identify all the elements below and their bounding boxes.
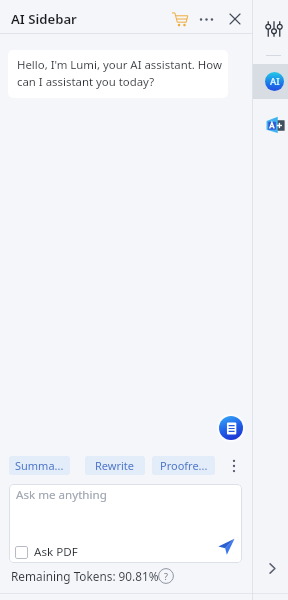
staticText: Hello, I'm Lumi, your AI assistant. How … xyxy=(17,57,226,89)
staticText: Rewrite xyxy=(95,458,135,473)
button[interactable]: Rewrite xyxy=(85,456,145,475)
button[interactable]: Send xyxy=(217,537,236,556)
button[interactable]: Close xyxy=(225,9,245,29)
button[interactable]: Document summary xyxy=(219,416,243,440)
button[interactable]: Ask PDF xyxy=(14,543,79,561)
button[interactable]: Translate xyxy=(263,113,287,137)
button[interactable]: AI assistant xyxy=(253,64,288,99)
staticText: Proofre... xyxy=(160,458,208,473)
staticText: AI xyxy=(270,75,280,88)
staticText: Summa... xyxy=(15,458,64,473)
button[interactable]: Expand panel xyxy=(262,558,282,578)
button[interactable]: Proofre... xyxy=(152,456,215,475)
staticText: AI Sidebar xyxy=(11,10,77,28)
staticText: Ask PDF xyxy=(34,544,78,560)
button[interactable]: Help xyxy=(158,568,174,584)
button[interactable]: Settings xyxy=(265,20,283,38)
staticText: ? xyxy=(164,570,168,582)
staticText: Remaining Tokens: 90.81% xyxy=(11,568,159,584)
button[interactable]: More options xyxy=(196,9,216,29)
button[interactable]: Summa... xyxy=(9,456,70,475)
button[interactable]: Store xyxy=(169,8,191,30)
staticText: Ask me anything xyxy=(16,487,107,503)
button[interactable]: More actions xyxy=(224,456,243,475)
